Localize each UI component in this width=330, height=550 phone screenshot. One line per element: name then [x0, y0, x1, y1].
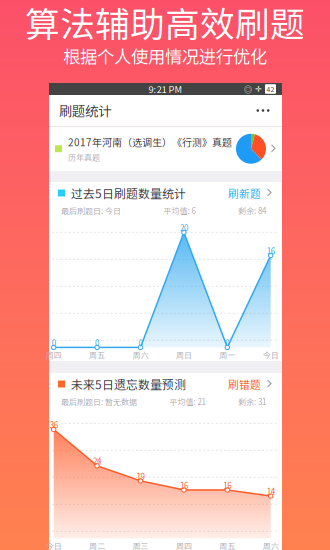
staticText: 刷错题	[228, 376, 261, 392]
staticText: 今日	[46, 540, 62, 550]
staticText: ✛	[255, 84, 262, 94]
staticText: 16	[223, 479, 231, 491]
staticText: 16	[180, 479, 188, 491]
staticText: 未来5日遗忘数量预测	[71, 375, 186, 393]
staticText: 19	[136, 470, 144, 482]
staticText: 周六	[263, 540, 279, 550]
staticText: 周五	[219, 540, 235, 550]
staticText: 今日	[263, 349, 279, 360]
staticText: 周六	[132, 349, 148, 360]
staticText: 历年真题	[68, 151, 100, 163]
staticText: 0	[52, 337, 56, 348]
staticText: 过去5日刷题数量统计	[71, 184, 186, 202]
staticText: 0	[95, 337, 99, 348]
staticText: 0	[138, 337, 142, 348]
staticText: 周日	[176, 349, 192, 360]
button[interactable]: 过去5日刷题数量统计	[49, 182, 282, 204]
staticText: ◎	[244, 83, 252, 95]
staticText: 平均值: 21	[169, 396, 205, 407]
staticText: 周二	[89, 540, 105, 550]
staticText: 周四	[46, 349, 62, 360]
staticText: 9:21 PM	[148, 82, 182, 96]
staticText: 0	[225, 337, 229, 348]
button[interactable]: More options	[250, 97, 276, 123]
staticText: 14	[267, 485, 275, 497]
staticText: 16	[267, 245, 275, 256]
staticText: 周三	[132, 540, 148, 550]
staticText: 刷新题	[228, 185, 261, 201]
staticText: 周四	[176, 540, 192, 550]
staticText: 周一	[219, 349, 235, 360]
staticText: 最后刷题日: 今日	[61, 205, 121, 216]
staticText: 24	[93, 455, 101, 467]
button[interactable]: 未来5日遗忘数量预测	[49, 373, 282, 395]
staticText: 剩余: 84	[238, 205, 266, 216]
staticText: 周五	[89, 349, 105, 360]
staticText: 最后刷题日: 暂无数据	[61, 396, 137, 407]
staticText: 36	[50, 419, 58, 431]
staticText: 剩余: 31	[238, 396, 266, 407]
staticText: 2017年河南（选调生）《行测》真题	[68, 135, 232, 149]
staticText: 刷题统计	[59, 101, 111, 120]
button[interactable]: 2017年河南（选调生）《行测》真题	[49, 126, 282, 171]
staticText: 20	[180, 222, 188, 233]
staticText: 根据个人使用情况进行优化	[63, 43, 267, 69]
staticText: 42	[266, 84, 274, 94]
staticText: 平均值: 6	[163, 205, 195, 216]
staticText: 算法辅助高效刷题	[25, 0, 305, 47]
